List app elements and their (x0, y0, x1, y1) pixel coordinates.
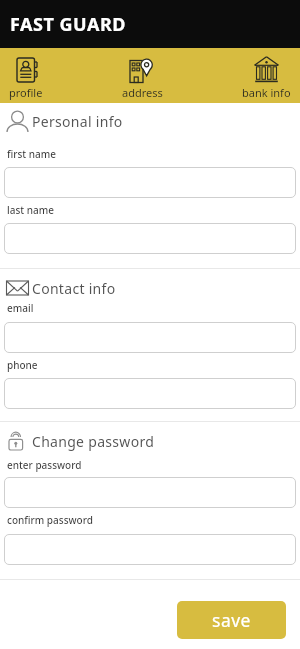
staticText: profile (9, 85, 43, 100)
button[interactable] (4, 223, 296, 254)
staticText: Personal info (32, 112, 123, 131)
staticText: address (122, 85, 163, 100)
staticText: last name (7, 203, 54, 217)
button[interactable] (4, 477, 296, 508)
staticText: phone (7, 358, 38, 372)
button[interactable]: address (118, 54, 167, 103)
staticText: email (7, 301, 34, 315)
staticText: Change password (32, 432, 155, 451)
staticText: save (212, 608, 251, 632)
staticText: confirm password (7, 513, 93, 527)
button[interactable]: bank info (238, 54, 295, 103)
staticText: enter password (7, 458, 82, 472)
button[interactable] (4, 167, 296, 198)
button[interactable]: save (177, 601, 286, 639)
staticText: Contact info (32, 279, 116, 298)
button[interactable] (4, 534, 296, 565)
staticText: bank info (242, 85, 291, 100)
staticText: first name (7, 147, 56, 161)
button[interactable] (4, 378, 296, 409)
button[interactable]: profile (5, 54, 47, 103)
button[interactable] (4, 322, 296, 353)
staticText: FAST GUARD (10, 12, 126, 37)
